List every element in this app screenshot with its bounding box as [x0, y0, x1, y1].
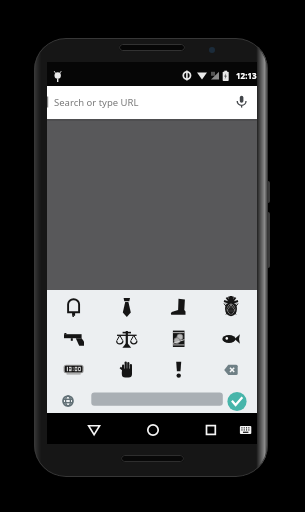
button[interactable] [47, 413, 117, 444]
button[interactable] [187, 413, 257, 444]
button[interactable] [47, 290, 257, 413]
button[interactable]: Search or type URL [47, 86, 257, 119]
staticText: Search or type URL [54, 96, 139, 109]
staticText: 12:13 [236, 70, 257, 81]
button[interactable] [117, 413, 187, 444]
